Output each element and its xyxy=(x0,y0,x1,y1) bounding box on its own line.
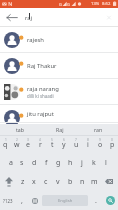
button[interactable]: n xyxy=(76,172,88,191)
staticText: m xyxy=(91,177,98,187)
staticText: l xyxy=(105,158,107,168)
button[interactable]: 7 xyxy=(70,136,82,154)
staticText: rajesh xyxy=(27,36,44,44)
button[interactable]: 2 xyxy=(11,136,22,154)
staticText: tab xyxy=(16,126,24,133)
staticText: p xyxy=(110,140,115,150)
staticText: f xyxy=(45,158,48,168)
staticText: k xyxy=(92,158,96,168)
staticText: , xyxy=(21,196,23,206)
staticText: ran xyxy=(94,126,103,133)
button[interactable]: 3 xyxy=(22,136,34,154)
button[interactable]: z xyxy=(17,172,28,191)
staticText: x xyxy=(32,177,36,187)
button[interactable]: Back xyxy=(2,8,22,26)
button[interactable]: h xyxy=(64,154,76,172)
button[interactable]: v xyxy=(52,172,64,191)
staticText: 5 xyxy=(51,138,53,142)
button[interactable]: 1 xyxy=(0,136,11,154)
staticText: G xyxy=(59,2,62,7)
staticText: G xyxy=(67,2,70,7)
staticText: v xyxy=(56,177,60,187)
button[interactable]: j xyxy=(76,154,88,172)
staticText: c xyxy=(44,177,48,187)
button[interactable]: 4 xyxy=(34,136,46,154)
staticText: 3 xyxy=(27,138,29,142)
button[interactable]: 8 xyxy=(82,136,94,154)
button[interactable]: ran xyxy=(79,124,118,135)
staticText: s xyxy=(20,158,24,168)
button[interactable]: f xyxy=(40,154,52,172)
button[interactable]: l xyxy=(100,154,112,172)
button[interactable]: tab xyxy=(0,124,40,135)
button[interactable]: Change keyboard language xyxy=(28,191,41,210)
staticText: y xyxy=(62,140,66,150)
button[interactable]: . xyxy=(89,191,102,210)
button[interactable]: x xyxy=(28,172,40,191)
staticText: j xyxy=(81,158,83,168)
staticText: a xyxy=(9,158,13,168)
button[interactable]: g xyxy=(52,154,64,172)
staticText: n xyxy=(80,177,85,187)
staticText: e xyxy=(26,140,30,150)
staticText: 8:52 xyxy=(102,1,111,7)
staticText: r xyxy=(39,140,42,150)
staticText: 9 xyxy=(99,138,101,142)
button[interactable]: k xyxy=(88,154,100,172)
staticText: Raj Thakur xyxy=(27,62,57,70)
staticText: dilli ki shaadi xyxy=(27,93,54,99)
staticText: 7 xyxy=(75,138,77,142)
staticText: ?123 xyxy=(3,198,13,204)
button[interactable]: s xyxy=(16,154,28,172)
staticText: q xyxy=(3,140,8,150)
staticText: 0 xyxy=(111,138,113,142)
button[interactable]: Raj xyxy=(40,124,79,135)
staticText: b xyxy=(68,177,73,187)
button[interactable]: 0 xyxy=(106,136,118,154)
button[interactable]: Backspace xyxy=(100,172,118,191)
staticText: raja narang xyxy=(27,85,59,93)
button[interactable]: jitu rajput xyxy=(0,105,118,123)
button[interactable]: 6 xyxy=(58,136,70,154)
button[interactable]: rajesh xyxy=(0,27,118,53)
staticText: 6 xyxy=(63,138,65,142)
button[interactable]: Search xyxy=(102,191,118,210)
button[interactable]: b xyxy=(64,172,76,191)
button[interactable]: ?123 xyxy=(0,191,15,210)
button[interactable]: a xyxy=(5,154,16,172)
button[interactable]: , xyxy=(15,191,28,210)
button[interactable]: m xyxy=(88,172,100,191)
staticText: u xyxy=(74,140,79,150)
staticText: 1 xyxy=(5,138,7,142)
button[interactable]: English xyxy=(42,195,88,206)
staticText: jitu rajput xyxy=(27,110,54,118)
staticText: English xyxy=(58,198,73,204)
staticText: 8 xyxy=(87,138,89,142)
staticText: i xyxy=(87,140,89,150)
staticText: w xyxy=(14,140,20,150)
staticText: h xyxy=(68,158,73,168)
button[interactable]: 9 xyxy=(94,136,106,154)
staticText: g xyxy=(56,158,61,168)
staticText: 2 xyxy=(16,138,18,142)
staticText: 4 xyxy=(39,138,41,142)
button[interactable]: Raj Thakur xyxy=(0,53,118,79)
staticText: t xyxy=(51,140,54,150)
staticText: d xyxy=(32,158,37,168)
staticText: Raj xyxy=(56,126,64,133)
staticText: o xyxy=(98,140,103,150)
staticText: raj xyxy=(25,14,33,22)
staticText: . xyxy=(95,196,97,206)
button[interactable]: Shift xyxy=(0,172,17,191)
button[interactable]: raja narang xyxy=(0,79,118,105)
button[interactable]: 5 xyxy=(46,136,58,154)
button[interactable]: d xyxy=(28,154,40,172)
button[interactable]: c xyxy=(40,172,52,191)
staticText: z xyxy=(21,177,25,187)
staticText: 13% xyxy=(91,1,100,7)
